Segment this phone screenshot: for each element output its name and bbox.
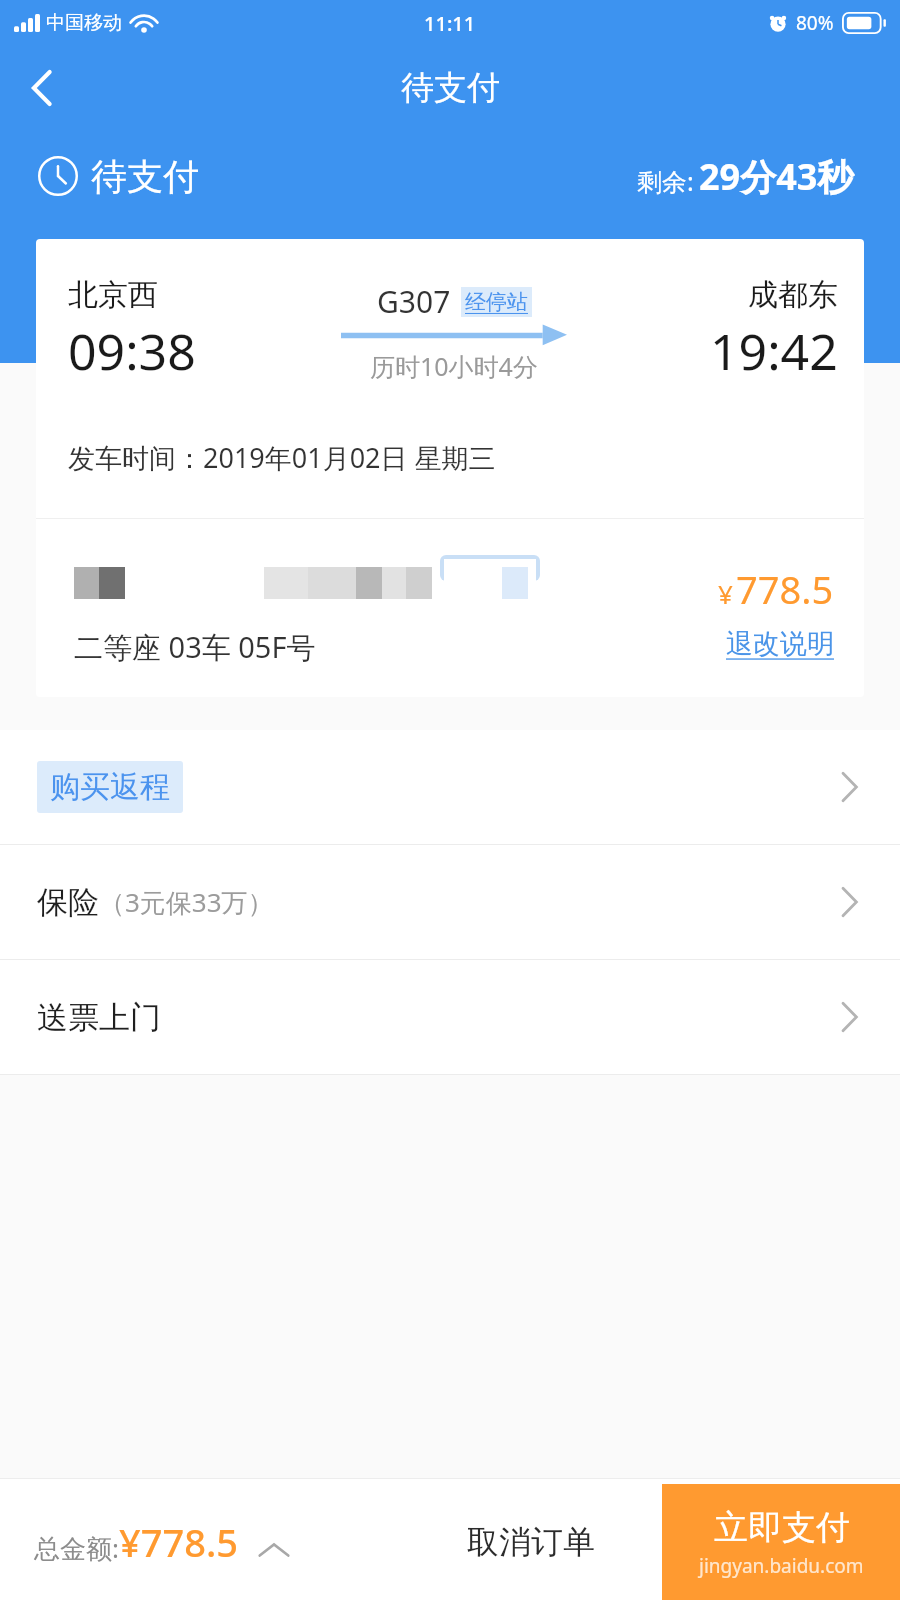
staticText: 购买返程 bbox=[50, 768, 170, 806]
staticText: 778.5 bbox=[736, 563, 834, 615]
staticText: 保险 bbox=[37, 883, 99, 922]
staticText: ¥778.5 bbox=[119, 1516, 239, 1568]
button[interactable]: 返回 bbox=[0, 46, 84, 129]
staticText: 二等座 03车 05F号 bbox=[74, 627, 316, 667]
staticText: 历时10小时4分 bbox=[370, 349, 538, 383]
button[interactable]: 总金额: bbox=[34, 1516, 291, 1568]
button[interactable]: 经停站 bbox=[465, 289, 528, 315]
staticText: 发车时间：2019年01月02日 星期三 bbox=[68, 439, 496, 476]
other: 展开明细 bbox=[257, 1540, 291, 1560]
staticText: 经停站 bbox=[465, 289, 528, 315]
staticText: 80% bbox=[796, 10, 834, 36]
staticText: 09:38 bbox=[68, 317, 196, 385]
staticText: 总金额: bbox=[34, 1530, 119, 1566]
staticText: 19:42 bbox=[710, 317, 838, 385]
button[interactable]: 购买返程 bbox=[0, 730, 900, 844]
staticText: 中国移动 bbox=[46, 11, 122, 35]
button[interactable]: 退改说明 bbox=[726, 627, 834, 661]
staticText: （3元保33万） bbox=[99, 884, 274, 920]
staticText: jingyan.baidu.com bbox=[699, 1553, 864, 1579]
staticText: 送票上门 bbox=[37, 998, 161, 1037]
staticText: 取消订单 bbox=[467, 1522, 595, 1562]
staticText: 11:11 bbox=[424, 10, 476, 37]
button[interactable]: 送票上门 bbox=[0, 960, 900, 1074]
button[interactable]: 取消订单 bbox=[455, 1508, 607, 1576]
staticText: 成都东 bbox=[748, 276, 838, 314]
staticText: 剩余: bbox=[637, 164, 694, 198]
staticText: 立即支付 bbox=[714, 1506, 850, 1549]
staticText: 退改说明 bbox=[726, 627, 834, 661]
staticText: 待支付 bbox=[91, 154, 199, 199]
staticText: ¥ bbox=[718, 576, 733, 611]
button[interactable]: 保险 bbox=[0, 845, 900, 959]
staticText: 待支付 bbox=[401, 67, 500, 109]
button[interactable]: 立即支付 bbox=[662, 1484, 900, 1600]
staticText: 北京西 bbox=[68, 276, 158, 314]
staticText: 29分43秒 bbox=[699, 152, 854, 201]
staticText: G307 bbox=[377, 281, 451, 322]
